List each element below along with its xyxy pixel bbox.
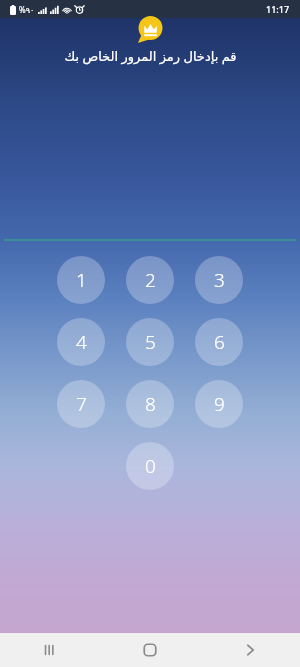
- button[interactable]: Back: [200, 633, 300, 667]
- button[interactable]: 5: [126, 318, 174, 366]
- button[interactable]: App badge: [137, 16, 163, 42]
- button[interactable]: 3: [195, 256, 243, 304]
- staticText: 3: [214, 267, 225, 293]
- button[interactable]: 2: [126, 256, 174, 304]
- staticText: قم بإدخال رمز المرور الخاص بك: [64, 47, 237, 65]
- staticText: 8: [145, 391, 156, 417]
- staticText: 9: [214, 391, 225, 417]
- button[interactable]: 4: [57, 318, 105, 366]
- staticText: 7: [76, 391, 87, 417]
- staticText: 5: [145, 329, 156, 355]
- staticText: 11:17: [266, 3, 290, 15]
- button[interactable]: 6: [195, 318, 243, 366]
- staticText: 6: [214, 329, 225, 355]
- button[interactable]: Recent apps: [0, 633, 100, 667]
- button[interactable]: 1: [57, 256, 105, 304]
- staticText: 1: [76, 267, 87, 293]
- staticText: 4: [76, 329, 87, 355]
- staticText: 2: [145, 267, 156, 293]
- button[interactable]: Home: [100, 633, 200, 667]
- button[interactable]: 8: [126, 380, 174, 428]
- button[interactable]: 7: [57, 380, 105, 428]
- button[interactable]: 9: [195, 380, 243, 428]
- staticText: %٩٠: [19, 4, 35, 15]
- staticText: 0: [145, 453, 156, 479]
- button[interactable]: 0: [126, 442, 174, 490]
